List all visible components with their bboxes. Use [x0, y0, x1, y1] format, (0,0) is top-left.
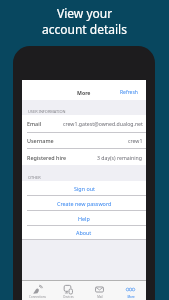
button[interactable]: Refresh	[120, 89, 146, 100]
button[interactable]: About	[22, 226, 146, 239]
staticText: Refresh	[120, 89, 138, 96]
staticText: View your	[57, 5, 113, 21]
staticText: Sign out	[74, 185, 95, 192]
staticText: Username	[27, 137, 54, 144]
staticText: More	[127, 295, 135, 299]
button[interactable]: Username	[22, 133, 146, 148]
staticText: OTHER	[28, 175, 41, 180]
staticText: crew1	[128, 137, 143, 144]
staticText: Devices	[63, 295, 74, 299]
button[interactable]: Mail	[84, 281, 115, 300]
staticText: Mail	[97, 295, 103, 299]
staticText: Create new password	[57, 200, 112, 207]
staticText: Help	[78, 215, 90, 222]
staticText: Email	[27, 120, 42, 127]
button[interactable]: Help	[22, 211, 146, 225]
button[interactable]: Email	[22, 115, 146, 132]
button[interactable]: Connections	[22, 281, 53, 300]
staticText: About	[76, 229, 92, 236]
staticText: crew1.gatest@owned.dualog.net	[63, 120, 143, 127]
staticText: Registered hire	[27, 154, 67, 161]
button[interactable]: More	[115, 281, 146, 300]
staticText: Connections	[29, 295, 46, 299]
button[interactable]: Create new password	[22, 196, 146, 210]
staticText: account details	[42, 21, 127, 37]
staticText: More	[77, 89, 91, 96]
staticText: USER INFORMATION	[28, 109, 66, 114]
button[interactable]: Registered hire	[22, 149, 146, 165]
staticText: 3 day(s) remaining	[97, 154, 143, 161]
button[interactable]: Devices	[53, 281, 84, 300]
button[interactable]: Sign out	[22, 181, 146, 195]
